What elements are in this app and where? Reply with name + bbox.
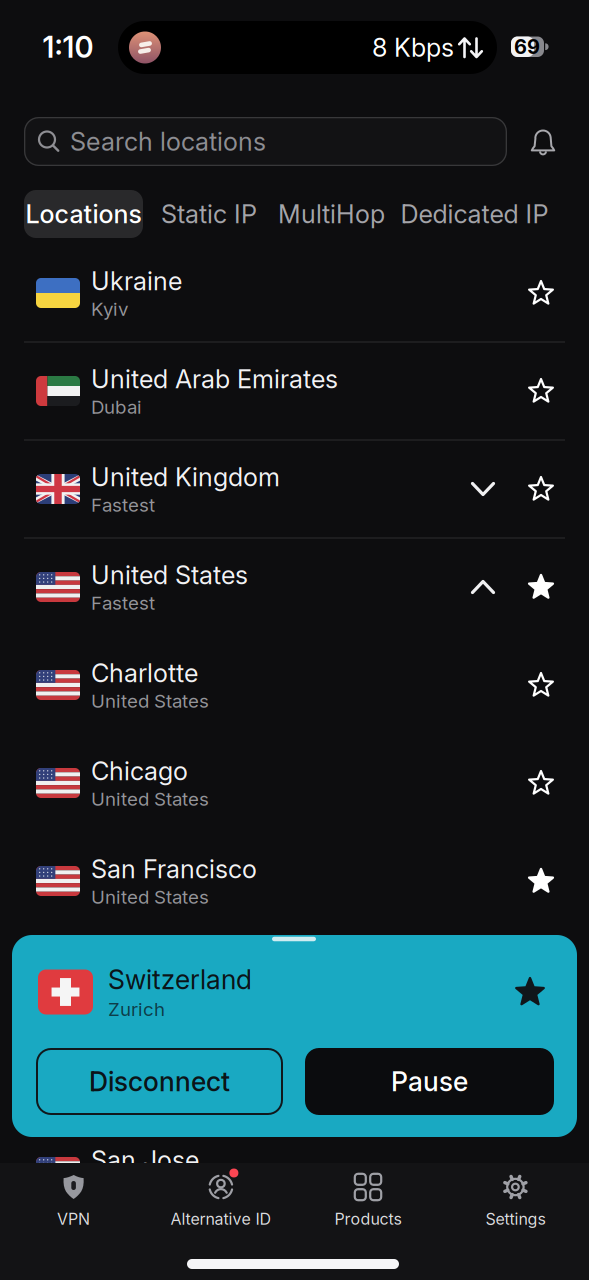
button[interactable]: Products xyxy=(295,1156,441,1236)
button[interactable]: United States xyxy=(0,538,589,636)
staticText: Products xyxy=(334,1210,401,1228)
staticText: Kyiv xyxy=(91,298,128,320)
staticText: Ukraine xyxy=(91,266,182,296)
staticText: Dubai xyxy=(91,396,142,418)
staticText: San Jose xyxy=(91,1145,199,1175)
staticText: Fastest xyxy=(91,494,155,516)
button[interactable]: Static IP xyxy=(161,199,257,229)
button[interactable]: Settings xyxy=(442,1156,588,1236)
button[interactable]: Chicago xyxy=(0,734,589,832)
staticText: Search locations xyxy=(70,127,266,156)
button[interactable]: Ukraine xyxy=(0,244,589,342)
staticText: Settings xyxy=(485,1210,545,1228)
button[interactable]: VPN xyxy=(1,1156,147,1236)
staticText: Chicago xyxy=(91,756,188,786)
button[interactable]: Pause xyxy=(305,1048,554,1115)
staticText: United States xyxy=(91,560,248,590)
button[interactable]: MultiHop xyxy=(278,199,385,229)
button[interactable]: Charlotte xyxy=(0,636,589,734)
button[interactable]: Alternative ID xyxy=(148,1156,294,1236)
staticText: Disconnect xyxy=(89,1066,230,1097)
button[interactable]: United Arab Emirates xyxy=(0,342,589,440)
button[interactable]: Dedicated IP xyxy=(400,199,548,229)
button[interactable]: Favorite xyxy=(515,977,545,1007)
staticText: VPN xyxy=(57,1210,90,1228)
staticText: United States xyxy=(91,690,209,712)
staticText: United States xyxy=(91,788,209,810)
staticText: Dedicated IP xyxy=(400,199,548,229)
staticText: United States xyxy=(91,886,209,908)
staticText: Alternative ID xyxy=(170,1210,271,1228)
staticText: Fastest xyxy=(91,592,155,614)
button[interactable]: Notifications xyxy=(530,128,556,156)
staticText: MultiHop xyxy=(278,199,385,229)
staticText: Charlotte xyxy=(91,658,198,688)
staticText: Locations xyxy=(25,199,141,229)
button[interactable]: Search locations xyxy=(24,117,507,166)
staticText: Pause xyxy=(391,1066,468,1097)
button[interactable]: Locations xyxy=(24,190,143,238)
button[interactable]: United Kingdom xyxy=(0,440,589,538)
staticText: San Francisco xyxy=(91,854,257,884)
staticText: Switzerland xyxy=(108,964,252,995)
button[interactable]: San Francisco xyxy=(0,832,589,930)
button[interactable]: Disconnect xyxy=(36,1048,283,1115)
staticText: 69 xyxy=(514,35,540,58)
button[interactable]: San Jose xyxy=(0,1123,589,1221)
staticText: United Arab Emirates xyxy=(91,364,338,394)
staticText: United Kingdom xyxy=(91,462,280,492)
staticText: 1:10 xyxy=(42,30,93,64)
staticText: Static IP xyxy=(161,199,257,229)
staticText: 8 Kbps xyxy=(372,33,454,62)
staticText: Zurich xyxy=(108,998,165,1020)
